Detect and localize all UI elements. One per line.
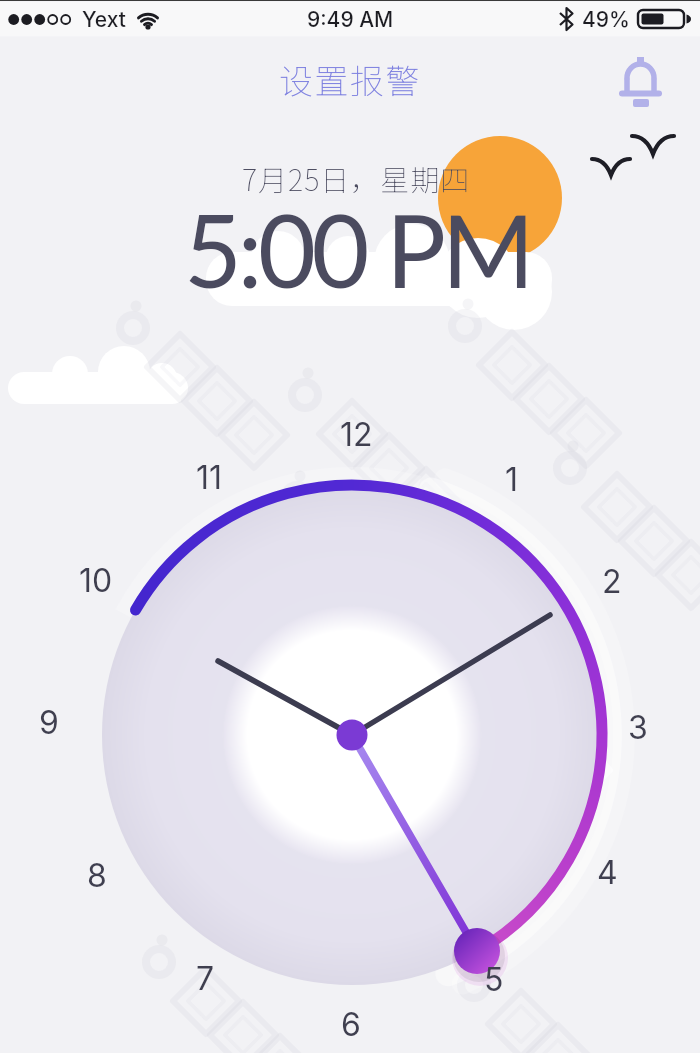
staticText: 11	[196, 458, 223, 497]
staticText: Yext	[82, 7, 126, 32]
staticText: 7	[196, 959, 215, 998]
staticText: 9:49 AM	[307, 7, 394, 32]
staticText: 49%	[582, 7, 630, 32]
staticText: 3	[628, 708, 648, 747]
button[interactable]: 设置报警	[0, 54, 700, 104]
staticText: 12	[340, 415, 373, 454]
staticText: 设置报警	[279, 55, 421, 104]
staticText: 8	[87, 856, 107, 895]
staticText: 9	[39, 703, 59, 742]
staticText: 10	[79, 561, 113, 600]
button[interactable]	[440, 914, 514, 988]
staticText: 5:00 PM	[184, 189, 530, 304]
staticText: 2	[602, 562, 622, 601]
staticText: 1	[505, 460, 519, 499]
button[interactable]	[612, 50, 670, 108]
staticText: 7月25日，星期四	[242, 157, 471, 199]
staticText: 4	[597, 853, 618, 892]
staticText: 6	[341, 1005, 361, 1044]
button[interactable]: 5:00 PM	[7, 189, 700, 304]
staticText: 5	[484, 960, 504, 999]
